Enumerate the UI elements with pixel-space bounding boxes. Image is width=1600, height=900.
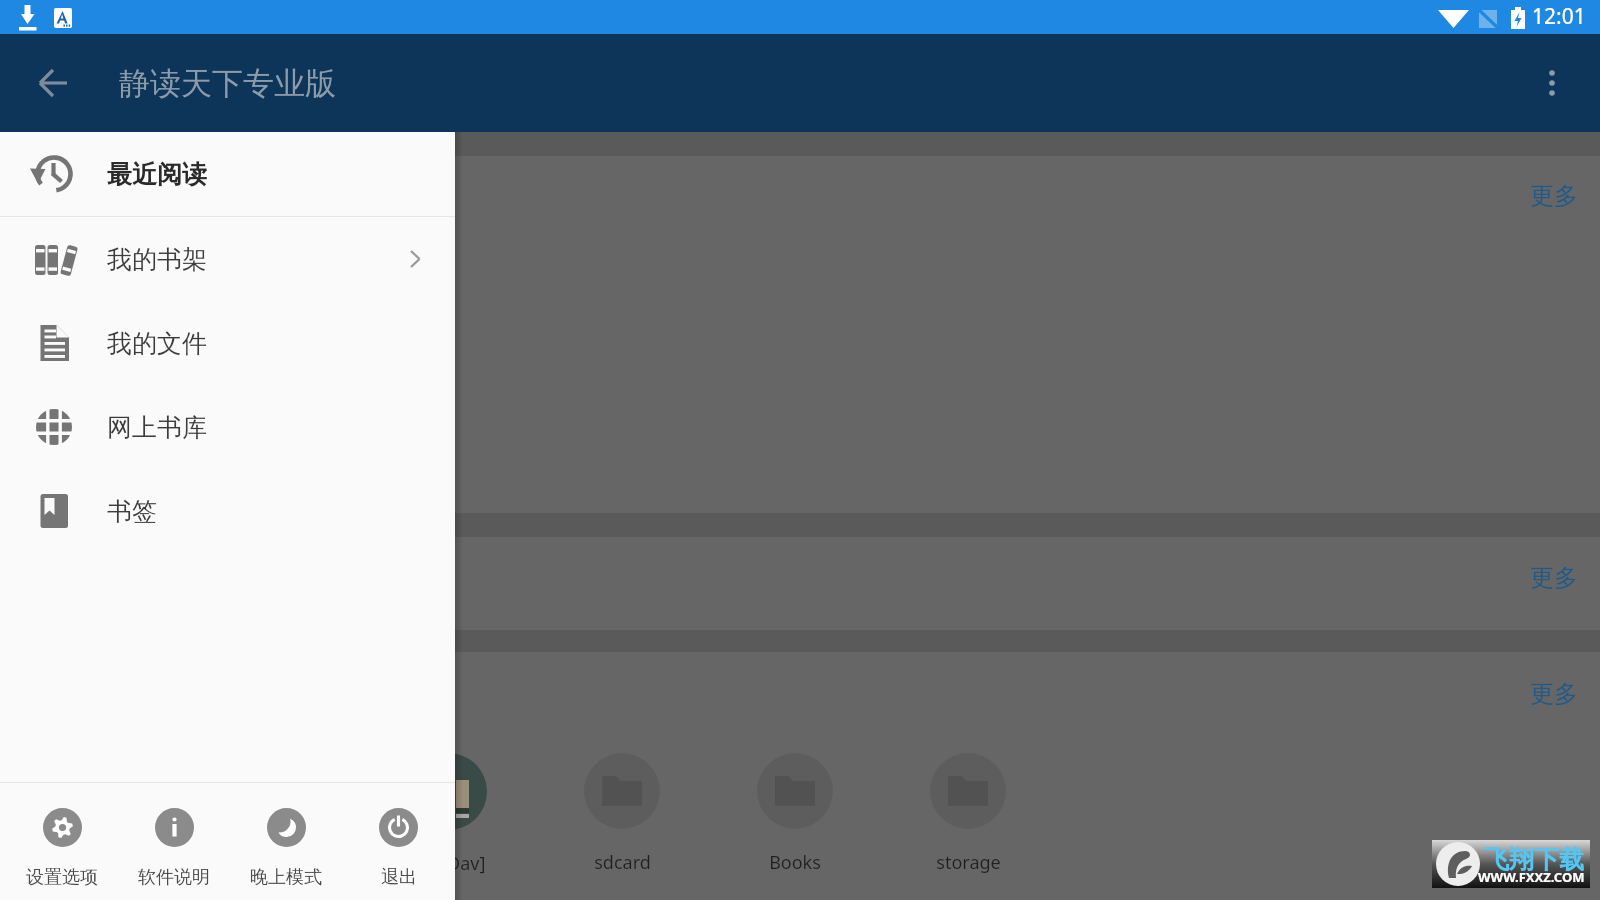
button[interactable]: 书签 — [0, 469, 455, 553]
staticText: 最近阅读 — [107, 159, 207, 190]
button[interactable]: Books — [739, 745, 851, 890]
staticText: 软件说明 — [138, 866, 210, 889]
staticText: 晚上模式 — [250, 866, 322, 889]
button[interactable]: 更多 — [1511, 551, 1597, 605]
button[interactable]: 退出 — [346, 783, 450, 900]
button[interactable]: 我的书架 — [0, 217, 455, 301]
button[interactable]: storage — [912, 745, 1024, 890]
staticText: 更多 — [1530, 679, 1578, 709]
staticText: 静读天下专业版 — [119, 64, 336, 103]
staticText: 更多 — [1530, 563, 1578, 593]
staticText: 我的文件 — [107, 328, 207, 359]
staticText: 飞翔下载 — [1484, 844, 1584, 875]
button[interactable]: 设置选项 — [10, 783, 114, 900]
staticText: 网上书库 — [107, 412, 207, 443]
staticText: storage — [936, 850, 1001, 875]
staticText: 设置选项 — [26, 866, 98, 889]
staticText: 我的书架 — [107, 244, 207, 275]
button[interactable]: 更多 — [1511, 667, 1597, 721]
button[interactable]: 我的文件 — [0, 301, 455, 385]
button[interactable]: 更多 — [1511, 169, 1597, 223]
button[interactable]: More options — [1528, 59, 1576, 107]
staticText: 12:01 — [1532, 2, 1586, 31]
staticText: Books — [769, 850, 821, 875]
button[interactable]: Back — [29, 59, 77, 107]
staticText: sdcard — [594, 850, 651, 875]
button[interactable]: 网上书库 — [0, 385, 455, 469]
staticText: WWW.FXXZ.COM — [1478, 868, 1585, 886]
button[interactable]: sdcard — [566, 745, 678, 890]
staticText: 更多 — [1530, 181, 1578, 211]
button[interactable]: 软件说明 — [122, 783, 226, 900]
staticText: 退出 — [381, 866, 417, 889]
staticText: Dav] — [447, 851, 486, 876]
button[interactable]: 晚上模式 — [234, 783, 338, 900]
button[interactable]: WebDav folder — [410, 753, 487, 830]
staticText: 书签 — [107, 496, 157, 527]
button[interactable]: 最近阅读 — [0, 132, 455, 216]
